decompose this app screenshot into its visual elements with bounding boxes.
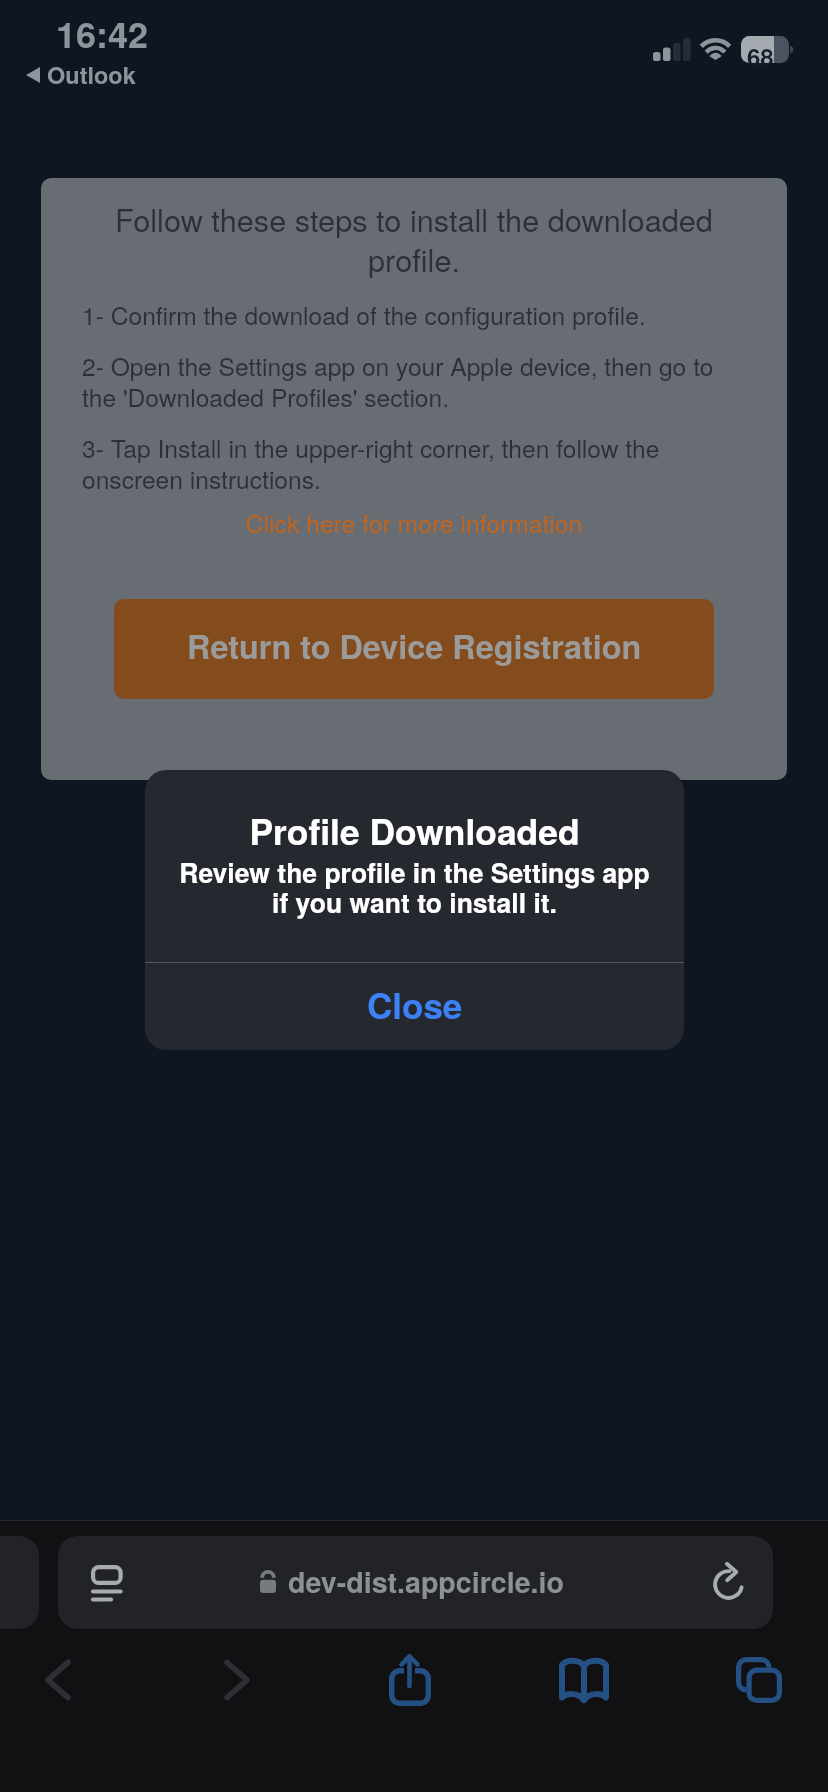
button[interactable]: Bookmarks [546, 1642, 622, 1718]
button[interactable]: Forward [199, 1642, 275, 1718]
staticText: Return to Device Registration [187, 623, 642, 669]
staticText: dev-dist.appcircle.io [288, 1561, 564, 1602]
staticText: Outlook [47, 58, 136, 92]
staticText: Profile Downloaded [145, 805, 684, 856]
button[interactable]: Back [20, 1642, 96, 1718]
staticText: 68 [747, 39, 774, 73]
staticText: Review the profile in the Settings app i… [175, 853, 654, 921]
staticText: 2- Open the Settings app on your Apple d… [82, 348, 720, 414]
staticText: Close [367, 980, 463, 1030]
button[interactable]: Share [371, 1641, 447, 1717]
staticText: Follow these steps to install the downlo… [74, 197, 754, 280]
staticText: 3- Tap Install in the upper-right corner… [82, 430, 702, 496]
button[interactable]: Close [145, 961, 684, 1048]
button[interactable]: Click here for more information [41, 505, 787, 540]
staticText: 1- Confirm the download of the configura… [82, 297, 762, 332]
button[interactable]: Return to Device Registration [114, 599, 714, 699]
button[interactable]: Page settings [58, 1536, 773, 1629]
button[interactable]: Page settings [74, 1551, 139, 1616]
button[interactable]: Reload [695, 1550, 760, 1615]
button[interactable]: Tabs [721, 1642, 797, 1718]
staticText: 16:42 [56, 7, 149, 59]
